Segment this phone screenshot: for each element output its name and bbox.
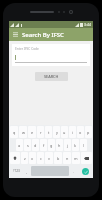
staticText: p (87, 130, 90, 135)
staticText: d (34, 143, 37, 148)
button[interactable]: x (29, 152, 36, 164)
button[interactable]: Enter (82, 168, 89, 175)
button[interactable]: ?123 (10, 165, 22, 177)
button[interactable]: SEARCH (35, 72, 68, 81)
staticText: g (50, 143, 53, 148)
staticText: n (66, 156, 69, 161)
staticText: ?123 (13, 169, 20, 173)
button[interactable]: b (54, 152, 62, 164)
button[interactable]: Backspace (81, 152, 92, 164)
button[interactable]: d (32, 139, 39, 151)
button[interactable]: y (53, 126, 60, 138)
staticText: j (67, 143, 68, 148)
staticText: b (57, 156, 60, 161)
staticText: v (48, 156, 50, 161)
staticText: h (58, 143, 61, 148)
staticText: z (24, 156, 26, 161)
button[interactable]: v (45, 152, 53, 164)
button[interactable]: g (48, 139, 55, 151)
staticText: r (40, 130, 42, 135)
staticText: i (72, 130, 73, 135)
button[interactable]: e (28, 126, 36, 138)
staticText: q (13, 130, 16, 135)
button[interactable]: Navigation menu (9, 28, 22, 41)
button[interactable]: m (72, 152, 80, 164)
button[interactable]: l (80, 139, 87, 151)
button[interactable]: k (72, 139, 79, 151)
button[interactable]: w (19, 126, 27, 138)
staticText: k (74, 143, 77, 148)
button[interactable]: q (10, 126, 18, 138)
button[interactable]: s (24, 139, 31, 151)
button[interactable]: Shift (10, 152, 20, 164)
staticText: Enter IFSC Code (15, 47, 39, 51)
button[interactable]: z (21, 152, 28, 164)
staticText: f (43, 143, 45, 148)
button[interactable]: a (16, 139, 23, 151)
staticText: Search By IFSC (22, 31, 64, 39)
staticText: o (79, 130, 82, 135)
button[interactable]: Comma (23, 165, 30, 177)
button[interactable]: h (56, 139, 63, 151)
button[interactable]: p (85, 126, 92, 138)
staticText: u (63, 130, 66, 135)
staticText: 3:44 (84, 22, 92, 27)
button[interactable]: o (77, 126, 84, 138)
button[interactable]: f (40, 139, 47, 151)
staticText: m (74, 156, 78, 161)
button[interactable]: t (45, 126, 52, 138)
staticText: x (31, 156, 34, 161)
button[interactable]: c (37, 152, 44, 164)
button[interactable]: u (61, 126, 68, 138)
button[interactable]: j (64, 139, 71, 151)
staticText: w (22, 130, 25, 135)
staticText: . (73, 169, 74, 174)
staticText: l (83, 143, 84, 148)
staticText: s (27, 143, 29, 148)
staticText: , (26, 169, 27, 174)
staticText: c (40, 156, 42, 161)
button[interactable]: r (37, 126, 44, 138)
staticText: t (48, 130, 50, 135)
button[interactable]: n (63, 152, 71, 164)
staticText: y (56, 130, 58, 135)
staticText: a (18, 143, 21, 148)
button[interactable]: i (69, 126, 76, 138)
staticText: SEARCH (44, 74, 59, 79)
staticText: e (31, 130, 34, 135)
